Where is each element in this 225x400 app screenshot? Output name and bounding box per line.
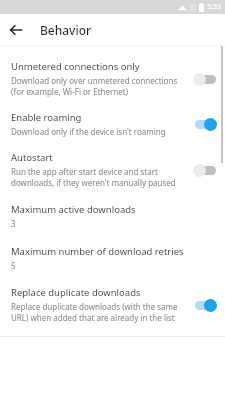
staticText: Replace duplicate downloads (with the sa… [11,301,187,323]
button[interactable]: Enable roaming [0,104,225,144]
button[interactable]: Replace duplicate downloads [0,279,225,330]
staticText: Behavior [40,22,92,38]
staticText: Replace duplicate downloads [11,286,141,299]
staticText: 5:33 [207,2,221,12]
staticText: Download only if the device isn't roamin… [11,126,166,137]
button[interactable]: Toggle on [193,298,217,312]
button[interactable]: Unmetered connections only [0,53,225,104]
button[interactable]: Autostart [0,144,225,195]
button[interactable]: Maximum number of download retries [0,237,225,279]
button[interactable]: Back [0,14,31,45]
staticText: Maximum number of download retries [11,245,184,258]
staticText: 3 [11,218,16,229]
staticText: Download only over unmetered connections… [11,75,187,97]
staticText: Autostart [11,151,53,164]
staticText: Unmetered connections only [11,60,140,73]
button[interactable]: Toggle off [193,72,217,86]
staticText: Maximum active downloads [11,203,136,216]
button[interactable]: Toggle off [193,163,217,177]
button[interactable]: Toggle on [193,117,217,131]
staticText: 5 [11,260,16,271]
staticText: Run the app after start device and start… [11,166,187,188]
staticText: Enable roaming [11,111,82,124]
button[interactable]: Maximum active downloads [0,195,225,237]
